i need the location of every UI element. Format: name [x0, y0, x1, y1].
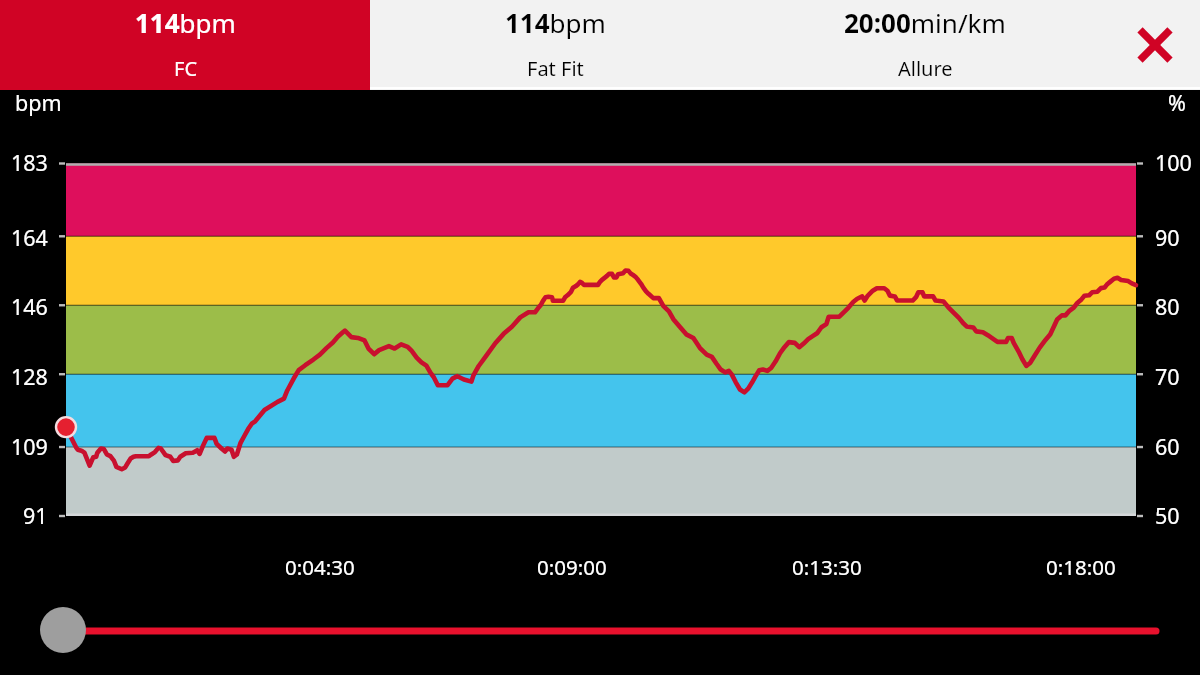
staticText: 0:18:00 [1046, 553, 1116, 581]
button[interactable]: Close [1110, 0, 1200, 90]
staticText: 91 [23, 501, 48, 530]
staticText: 90 [1155, 223, 1180, 252]
staticText: Fat Fit [527, 55, 584, 82]
staticText: 114bpm [505, 5, 606, 40]
staticText: Allure [898, 55, 953, 82]
staticText: 164 [11, 223, 48, 252]
button[interactable]: 20:00min/km [740, 0, 1110, 90]
staticText: 0:04:30 [285, 553, 355, 581]
staticText: 0:13:30 [792, 553, 862, 581]
staticText: 109 [11, 432, 48, 461]
staticText: 70 [1155, 362, 1180, 391]
staticText: 183 [11, 148, 48, 177]
button[interactable]: 114bpm [370, 0, 740, 90]
staticText: 20:00min/km [844, 5, 1006, 40]
staticText: 146 [11, 292, 48, 321]
staticText: FC [174, 55, 198, 82]
staticText: 0:09:00 [537, 553, 607, 581]
staticText: 114bpm [135, 5, 236, 40]
staticText: bpm [15, 88, 62, 117]
staticText: 50 [1155, 501, 1180, 530]
staticText: 60 [1155, 432, 1180, 461]
button[interactable]: 114bpm [0, 0, 370, 90]
button[interactable]: Seek to position in workout [36, 601, 1164, 659]
staticText: 128 [11, 362, 48, 391]
staticText: 100 [1155, 148, 1192, 177]
staticText: 80 [1155, 292, 1180, 321]
staticText: % [1168, 88, 1186, 117]
